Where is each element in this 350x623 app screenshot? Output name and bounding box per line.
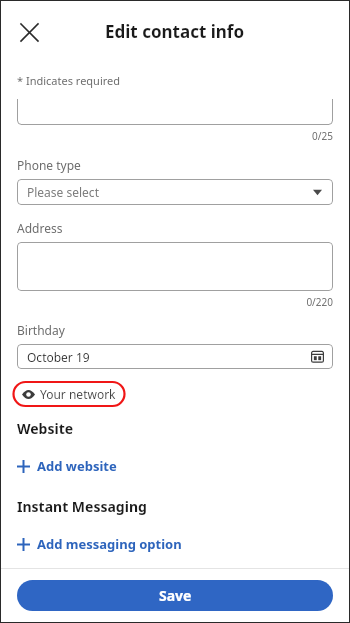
button[interactable] [17,242,333,291]
staticText: Add website [37,457,117,475]
staticText: 0/220 [1,295,333,309]
button[interactable] [17,99,333,125]
button[interactable]: October 19 [17,344,333,369]
staticText: October 19 [27,349,90,365]
staticText: 0/25 [1,129,333,143]
staticText: Please select [27,184,99,200]
staticText: Phone type [17,157,81,173]
button[interactable]: Add messaging option [17,533,182,555]
staticText: Add messaging option [37,535,182,553]
button[interactable]: Your network [22,386,116,402]
button[interactable]: Save [17,580,333,611]
button[interactable]: Please select [17,179,333,205]
staticText: * Indicates required [17,73,121,88]
staticText: Address [17,220,63,236]
staticText: Birthday [17,322,65,338]
button[interactable]: Add website [17,455,117,477]
staticText: Edit contact info [105,20,245,43]
button[interactable]: Close [9,12,49,52]
staticText: Save [159,586,192,605]
staticText: Website [17,419,74,438]
staticText: Instant Messaging [17,497,147,516]
staticText: Your network [40,386,116,402]
